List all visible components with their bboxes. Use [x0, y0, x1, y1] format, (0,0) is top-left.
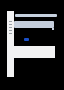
button[interactable]: Send	[24, 38, 29, 41]
button[interactable]: Nav item 1	[7, 20, 14, 23]
button[interactable]: Search	[15, 14, 57, 17]
button[interactable]: Nav item 3	[7, 26, 14, 29]
button[interactable]: Nav item 2	[7, 23, 14, 26]
button[interactable]: Nav item 4	[7, 29, 14, 32]
button[interactable]: Nav item 5	[7, 32, 14, 35]
